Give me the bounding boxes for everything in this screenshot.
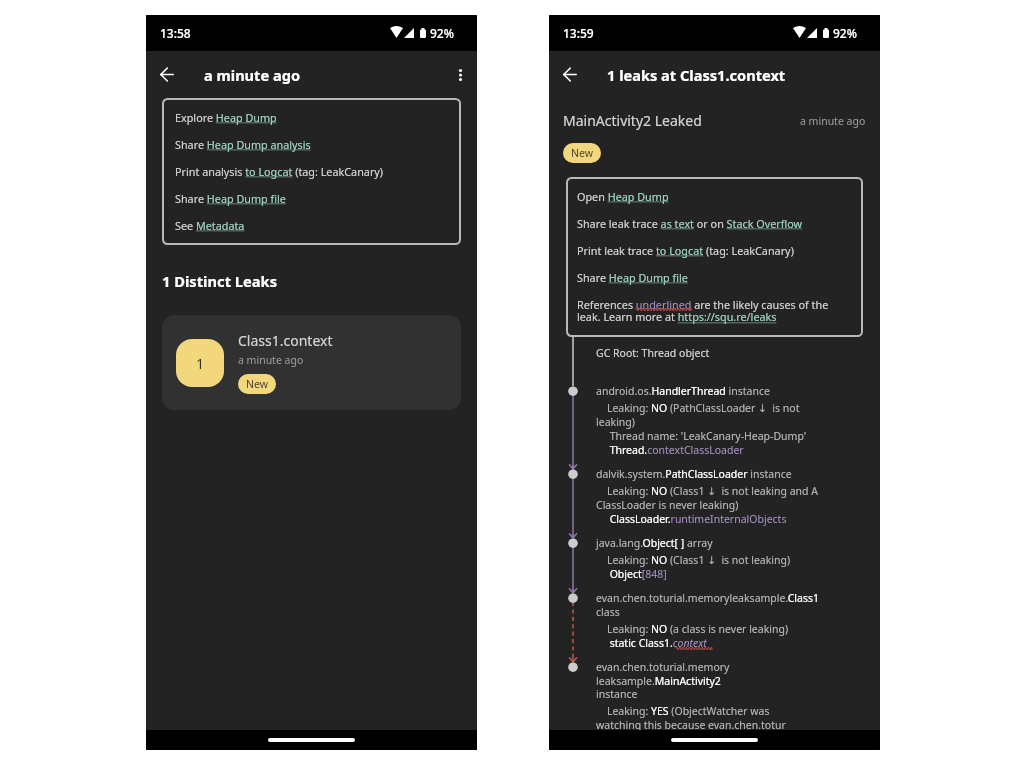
staticText: GC Root: Thread object [596,346,710,360]
staticText: New [571,146,593,160]
staticText: a minute ago [204,65,301,85]
staticText: Thread.contextClassLoader [596,443,744,457]
button[interactable]: Print analysis to Logcat (tag: LeakCanar… [175,164,448,179]
button[interactable]: New [563,143,601,163]
staticText: ClassLoader.runtimeInternalObjects [596,512,787,526]
staticText: 1 leaks at Class1.context [607,65,786,85]
staticText: Leaking: NO (a class is never leaking) [596,622,789,636]
button[interactable]: Print leak trace to Logcat (tag: LeakCan… [577,243,852,258]
staticText: android.os.HandlerThread instance [596,384,770,398]
button[interactable]: evan.chen.toturial.memoryleaksample.Clas… [549,591,880,660]
button[interactable]: Share Heap Dump file [175,191,448,206]
staticText: 92% [430,25,454,41]
button[interactable]: New [238,374,276,394]
button[interactable]: Explore Heap Dump [175,110,448,125]
staticText: 1 Distinct Leaks [162,271,278,291]
staticText: Object[848] [596,567,667,581]
staticText: a minute ago [238,353,304,367]
staticText: Leaking: NO (Class1 ↓ is not leaking) [596,553,791,567]
staticText: 13:59 [563,25,594,41]
staticText: 1 [196,354,205,373]
button[interactable]: evan.chen.toturial.memory leaksample.Mai… [549,660,880,730]
staticText: MainActivity2 Leaked [563,111,702,130]
staticText: 92% [833,25,857,41]
button[interactable]: Back [557,62,583,87]
staticText: 13:58 [160,25,191,41]
button[interactable]: Back [154,62,180,87]
button[interactable]: Share Heap Dump analysis [175,137,448,152]
staticText: a minute ago [800,114,866,128]
button[interactable]: Share leak trace as text or on Stack Ove… [577,216,852,231]
button[interactable]: 1 [162,315,461,410]
staticText: dalvik.system.PathClassLoader instance [596,467,792,481]
button[interactable]: Share Heap Dump file [577,270,852,285]
staticText: Leaking: YES (ObjectWatcher was watching… [596,704,786,730]
staticText: evan.chen.toturial.memory leaksample.Mai… [596,660,730,701]
button[interactable]: Open Heap Dump [577,189,852,204]
button[interactable]: dalvik.system.PathClassLoader instance [549,467,880,536]
staticText: Leaking: NO (PathClassLoader ↓ is not le… [596,401,827,429]
button[interactable]: java.lang.Object[ ] array [549,536,880,591]
button[interactable]: See Metadata [175,218,448,233]
staticText: References underlined are the likely cau… [577,297,852,325]
staticText: Class1.context [238,331,333,350]
button[interactable]: More options [452,62,469,88]
staticText: Thread name: 'LeakCanary-Heap-Dump' [596,429,807,443]
staticText: Leaking: NO (Class1 ↓ is not leaking and… [596,484,827,512]
staticText: static Class1.context [596,636,707,650]
staticText: New [246,377,268,391]
button[interactable]: android.os.HandlerThread instance [549,384,880,467]
staticText: evan.chen.toturial.memoryleaksample.Clas… [596,591,827,619]
staticText: java.lang.Object[ ] array [596,536,713,550]
